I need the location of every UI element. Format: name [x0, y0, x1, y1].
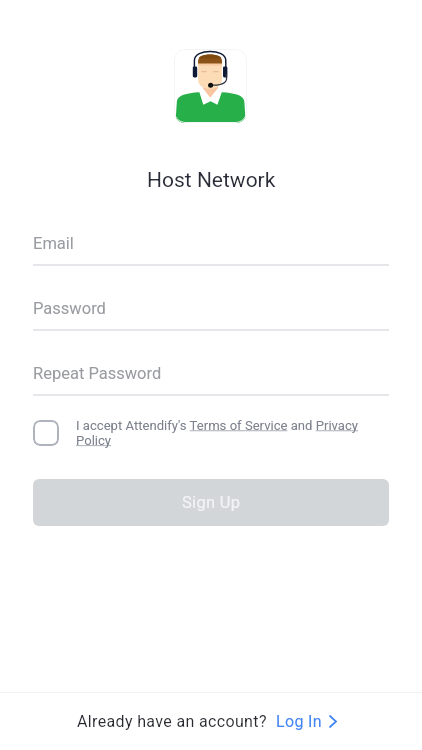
staticText: Password [33, 299, 106, 318]
staticText: Sign Up [182, 493, 241, 512]
button[interactable]: Log In [276, 712, 337, 731]
staticText: Log In [276, 712, 322, 731]
staticText: Already have an account? [77, 712, 267, 731]
staticText: I accept Attendify's Terms of Service an… [76, 418, 392, 448]
staticText: Repeat Password [33, 364, 162, 383]
button[interactable]: Sign Up [33, 479, 389, 526]
button[interactable]: Repeat Password [33, 364, 389, 396]
button[interactable]: Accept terms and conditions [33, 420, 59, 446]
staticText: Email [33, 234, 74, 253]
staticText: Host Network [147, 168, 276, 193]
button[interactable]: Email [33, 234, 389, 266]
button[interactable]: Password [33, 299, 389, 331]
